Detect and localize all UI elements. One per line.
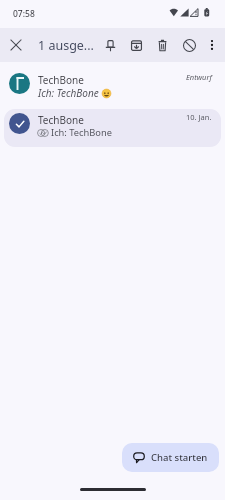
staticText: 07:58: [13, 8, 35, 20]
button[interactable]: Weitere Optionen: [199, 30, 225, 60]
staticText: Ich: TechBone: [51, 126, 112, 139]
button[interactable]: Anheften: [97, 30, 123, 60]
staticText: Chat starten: [151, 451, 208, 464]
button[interactable]: Löschen: [149, 30, 175, 60]
button[interactable]: Chat starten: [122, 443, 219, 472]
staticText: Ich: TechBone: [38, 86, 99, 100]
button[interactable]: Archivieren: [123, 30, 149, 60]
staticText: TechBone: [38, 73, 84, 85]
button[interactable]: TechBone: [4, 69, 221, 107]
button[interactable]: Blockieren: [176, 30, 202, 60]
staticText: 1 ausge...: [38, 37, 94, 54]
staticText: TechBone: [38, 113, 84, 125]
button[interactable]: TechBone: [4, 109, 221, 147]
staticText: Entwurf: [186, 72, 212, 82]
staticText: 10. Jan.: [186, 112, 212, 122]
button[interactable]: Auswahl schließen: [4, 33, 28, 57]
